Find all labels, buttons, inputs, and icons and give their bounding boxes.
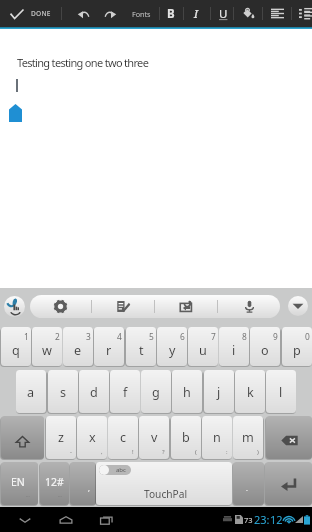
button[interactable]: j [204, 370, 234, 413]
button[interactable]: I [185, 0, 207, 27]
button[interactable]: Edit text [92, 295, 154, 318]
staticText: 9 [273, 331, 278, 342]
button[interactable]: Comma [70, 462, 96, 505]
button[interactable]: Align left [264, 0, 290, 27]
staticText: 5 [149, 331, 154, 342]
button[interactable]: i [219, 327, 249, 366]
button[interactable]: Bullet list [292, 0, 312, 27]
button[interactable]: Fonts [126, 0, 156, 27]
staticText: 12# [45, 475, 64, 489]
button[interactable]: x [77, 416, 107, 459]
staticText: , [88, 484, 90, 494]
staticText: u [199, 342, 207, 359]
button[interactable]: m [233, 416, 263, 459]
staticText: i [232, 342, 236, 359]
button[interactable]: k [235, 370, 265, 413]
button[interactable]: Redo [97, 0, 123, 27]
button[interactable]: Enter [265, 462, 312, 505]
button[interactable]: n [202, 416, 232, 459]
button[interactable]: p [282, 327, 312, 366]
button[interactable]: Collapse keyboard [288, 296, 308, 316]
button[interactable]: Recent apps [90, 507, 124, 532]
staticText: v [151, 429, 158, 446]
button[interactable]: Backspace [266, 416, 312, 459]
button[interactable]: DONE [0, 0, 61, 27]
button[interactable]: B [160, 0, 182, 27]
staticText: m [242, 429, 254, 446]
staticText: d [90, 384, 98, 401]
staticText: 4 [117, 331, 122, 342]
staticText: U [219, 6, 228, 22]
staticText: Testing testing one two three [17, 55, 149, 70]
staticText: 23: [254, 512, 270, 527]
staticText: b [182, 429, 190, 446]
staticText: 7 [211, 331, 216, 342]
button[interactable]: Settings [30, 295, 91, 318]
staticText: h [183, 384, 191, 401]
staticText: : [226, 448, 228, 456]
staticText: q [12, 342, 20, 359]
staticText: 1 [24, 331, 29, 342]
staticText: 73 [244, 515, 253, 525]
button[interactable]: Home [49, 507, 83, 532]
button[interactable]: u [188, 327, 218, 366]
button[interactable]: h [172, 370, 202, 413]
button[interactable]: a [16, 370, 46, 413]
button[interactable]: t [126, 327, 156, 366]
staticText: TouchPal [144, 487, 188, 501]
button[interactable]: EN [1, 462, 38, 505]
button[interactable]: b [171, 416, 201, 459]
staticText: 6 [180, 331, 185, 342]
button[interactable]: f [110, 370, 140, 413]
button[interactable]: Period [233, 462, 264, 505]
button[interactable]: TouchPal menu [4, 296, 25, 317]
staticText: ! [132, 448, 134, 456]
staticText: t [139, 342, 144, 359]
staticText: f [123, 384, 128, 401]
button[interactable]: Text cursor handle [9, 104, 22, 122]
button[interactable]: r [94, 327, 124, 366]
staticText: j [217, 384, 221, 401]
staticText: ( [195, 448, 197, 456]
button[interactable]: o [250, 327, 280, 366]
button[interactable]: w [32, 327, 62, 366]
button[interactable]: Shift [1, 416, 44, 459]
button[interactable]: d [79, 370, 109, 413]
staticText: EN [11, 475, 25, 489]
button[interactable]: Emoji sticker [155, 295, 217, 318]
button[interactable]: Text color [235, 0, 261, 27]
staticText: 3 [86, 331, 91, 342]
button[interactable]: U [212, 0, 234, 27]
staticText: ... [26, 492, 30, 498]
button[interactable]: s [48, 370, 78, 413]
button[interactable]: Undo [70, 0, 96, 27]
staticText: g [152, 384, 160, 401]
button[interactable]: Voice input [218, 295, 280, 318]
staticText: k [247, 384, 254, 401]
button[interactable]: e [63, 327, 93, 366]
button[interactable]: Space [96, 462, 232, 505]
button[interactable]: g [141, 370, 171, 413]
staticText: y [169, 342, 176, 359]
button[interactable]: v [139, 416, 169, 459]
button[interactable]: Back [8, 507, 42, 532]
staticText: l [279, 384, 283, 401]
button[interactable]: z [46, 416, 76, 459]
staticText: Fonts [132, 9, 151, 19]
staticText: 0 [305, 331, 310, 342]
staticText: z [58, 429, 64, 446]
staticText: . [246, 484, 248, 494]
button[interactable]: q [1, 327, 31, 366]
staticText: p [293, 342, 301, 359]
staticText: DONE [31, 9, 51, 18]
staticText: s [60, 384, 67, 401]
button[interactable]: c [108, 416, 138, 459]
button[interactable]: y [157, 327, 187, 366]
button[interactable]: abc [99, 465, 131, 475]
staticText: x [89, 429, 96, 446]
staticText: 2 [55, 331, 60, 342]
button[interactable]: l [266, 370, 296, 413]
staticText: ... [58, 492, 62, 498]
staticText: B [167, 6, 175, 22]
button[interactable]: 12# [40, 462, 69, 505]
